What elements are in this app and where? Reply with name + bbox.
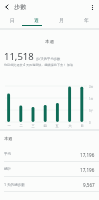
staticText: 日 (10, 17, 15, 23)
staticText: 11,518 (4, 50, 34, 63)
staticText: 步數 (14, 3, 27, 11)
staticText: 你目前比過去 4 天的進度快。繼續保持下去！ 加油 (4, 63, 74, 67)
staticText: 本週 (4, 136, 13, 141)
staticText: 5千 (89, 109, 94, 113)
staticText: 本週 (45, 39, 54, 45)
staticText: 17,196 (80, 167, 95, 173)
staticText: 1萬 (89, 97, 94, 101)
staticText: 二 (19, 124, 23, 128)
staticText: 步/天的平均步數 (36, 56, 61, 61)
staticText: 一 (7, 124, 11, 128)
staticText: 總計 (4, 167, 12, 172)
staticText: 月 (59, 17, 64, 23)
button[interactable]: 平均 (0, 147, 99, 162)
button[interactable]: 1 天的總步數 (0, 177, 99, 192)
staticText: 9,567 (83, 182, 95, 188)
button[interactable]: 年 (74, 14, 99, 27)
staticText: 五 (55, 124, 59, 128)
staticText: 1 天的總步數 (4, 182, 25, 187)
staticText: 四 (43, 124, 47, 128)
button[interactable]: 日 (0, 14, 24, 27)
staticText: 2萬 (89, 85, 94, 89)
button[interactable]: 週 (24, 14, 49, 27)
staticText: 週 (34, 17, 39, 23)
staticText: 年 (84, 17, 89, 23)
staticText: 17,196 (80, 152, 95, 158)
button[interactable]: 月 (49, 14, 74, 27)
staticText: 日 (80, 124, 84, 128)
button[interactable]: Back (0, 0, 14, 14)
button[interactable]: 總計 (0, 162, 99, 177)
staticText: 平均 (4, 152, 12, 157)
staticText: 六 (68, 124, 72, 128)
staticText: 0 (89, 121, 91, 125)
button[interactable]: More options (85, 0, 99, 14)
staticText: 三 (31, 124, 35, 128)
